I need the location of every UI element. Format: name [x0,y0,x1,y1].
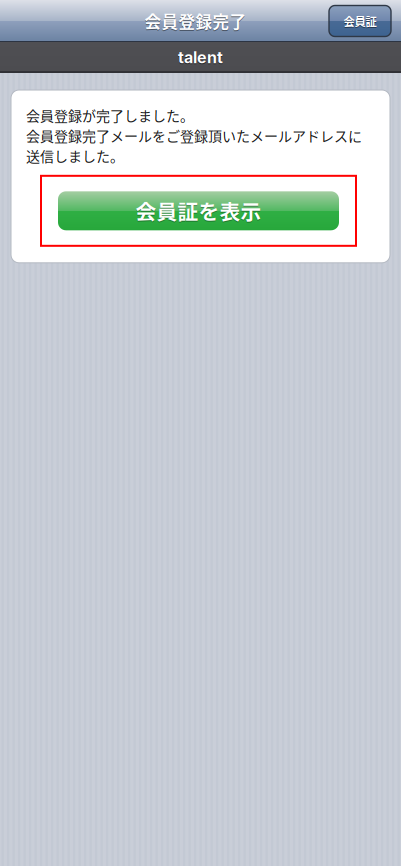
staticText: 会員証を表示 [135,196,261,226]
staticText: 会員証 [343,13,376,29]
staticText: talent [178,49,223,68]
staticText: 会員登録完了 [144,10,246,34]
button[interactable]: 会員証を表示 [41,176,356,246]
staticText: 送信しました。 [26,145,124,166]
staticText: 会員証を表示 [135,197,261,227]
staticText: talent [178,48,223,67]
staticText: 会員登録完了メールをご登録頂いたメールアドレスに [26,125,362,146]
staticText: 会員登録完了 [144,9,246,33]
button[interactable]: 会員証 [329,5,391,36]
staticText: 会員登録が完了しました。 [26,105,194,125]
staticText: 会員証 [343,14,376,30]
